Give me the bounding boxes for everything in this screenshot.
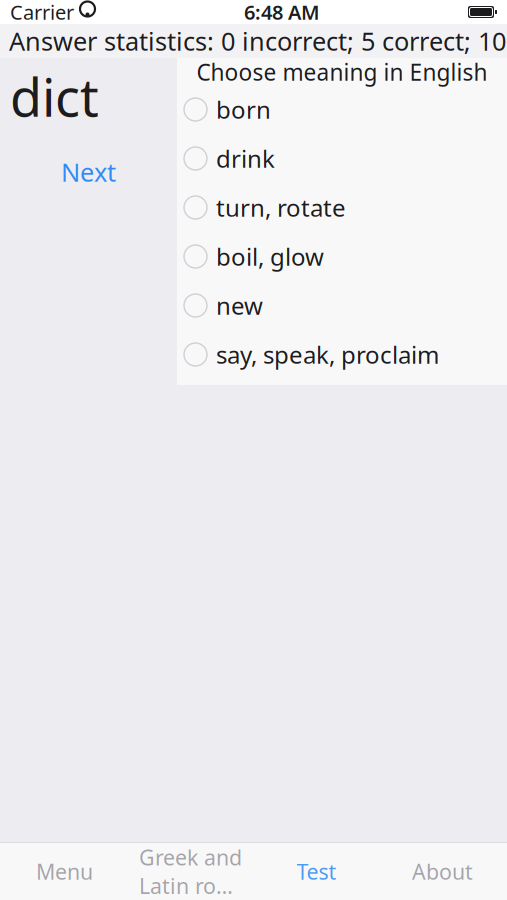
button[interactable]: born xyxy=(177,85,507,134)
button[interactable]: turn, rotate xyxy=(177,183,507,232)
button[interactable]: Greek and Latin ro… xyxy=(127,843,253,900)
staticText: About xyxy=(412,857,473,886)
staticText: Choose meaning in English xyxy=(196,57,487,87)
button[interactable]: Menu xyxy=(1,843,127,900)
button[interactable]: Test xyxy=(253,843,379,900)
button[interactable]: boil, glow xyxy=(177,232,507,281)
staticText: Menu xyxy=(36,857,93,886)
button[interactable]: say, speak, proclaim xyxy=(177,330,507,379)
staticText: Next xyxy=(61,155,116,189)
staticText: Answer statistics: 0 incorrect; 5 correc… xyxy=(9,24,507,58)
staticText: Test xyxy=(296,857,336,886)
staticText: Carrier xyxy=(10,0,74,25)
staticText: 6:48 AM xyxy=(244,0,320,25)
button[interactable]: new xyxy=(177,281,507,330)
button[interactable]: About xyxy=(379,843,505,900)
staticText: boil, glow xyxy=(216,241,324,272)
staticText: say, speak, proclaim xyxy=(216,339,439,370)
staticText: Greek and Latin ro… xyxy=(139,843,242,900)
button[interactable]: drink xyxy=(177,134,507,183)
staticText: born xyxy=(216,94,271,125)
staticText: dict xyxy=(10,62,99,131)
button[interactable]: Next xyxy=(51,151,126,193)
staticText: drink xyxy=(216,143,275,174)
staticText: new xyxy=(216,290,263,321)
staticText: turn, rotate xyxy=(216,192,346,223)
